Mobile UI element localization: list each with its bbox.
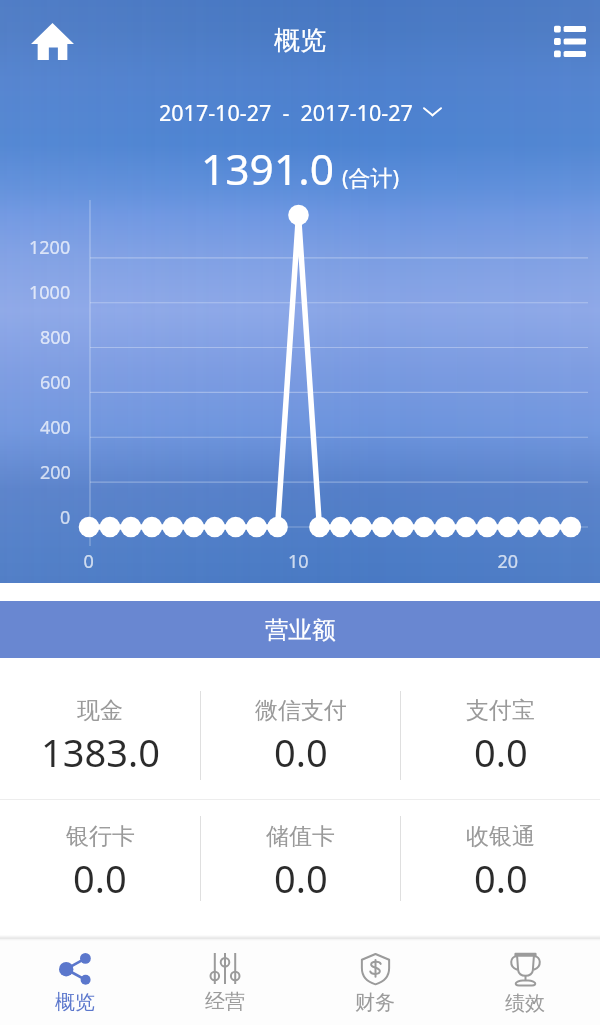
staticText: (合计)	[342, 162, 400, 192]
staticText: 0.0	[274, 726, 328, 778]
staticText: 0.0	[474, 852, 528, 904]
button[interactable]: 现金	[0, 658, 200, 799]
button[interactable]: 营业额	[0, 601, 600, 658]
staticText: 0.0	[274, 852, 328, 904]
staticText: 0.0	[474, 726, 528, 778]
staticText: 收银通	[466, 822, 535, 851]
staticText: 2017-10-27 - 2017-10-27	[159, 98, 413, 124]
staticText: 银行卡	[66, 822, 135, 851]
button[interactable]: 概览	[0, 941, 150, 1025]
staticText: 微信支付	[255, 696, 347, 725]
staticText: 经营	[205, 989, 245, 1014]
staticText: 财务	[355, 990, 395, 1015]
staticText: 储值卡	[266, 822, 335, 851]
button[interactable]: 收银通	[401, 800, 600, 935]
staticText: 营业额	[265, 615, 336, 645]
button[interactable]: 2017-10-27 - 2017-10-27	[159, 98, 441, 124]
button[interactable]: 银行卡	[0, 800, 200, 935]
staticText: 现金	[77, 696, 123, 725]
staticText: 绩效	[505, 991, 545, 1016]
button[interactable]: 经营	[150, 941, 300, 1025]
staticText: 1383.0	[41, 726, 160, 778]
button[interactable]: Home	[26, 15, 78, 67]
button[interactable]: 储值卡	[201, 800, 400, 935]
staticText: 概览	[55, 990, 95, 1015]
button[interactable]: 微信支付	[201, 658, 400, 799]
staticText: 概览	[274, 24, 326, 57]
button[interactable]: 绩效	[450, 941, 600, 1025]
button[interactable]: Menu list	[548, 19, 592, 63]
button[interactable]: 财务	[300, 941, 450, 1025]
button[interactable]: 支付宝	[401, 658, 600, 799]
staticText: 0.0	[73, 852, 127, 904]
staticText: 支付宝	[466, 696, 535, 725]
staticText: 1391.0	[201, 140, 334, 198]
